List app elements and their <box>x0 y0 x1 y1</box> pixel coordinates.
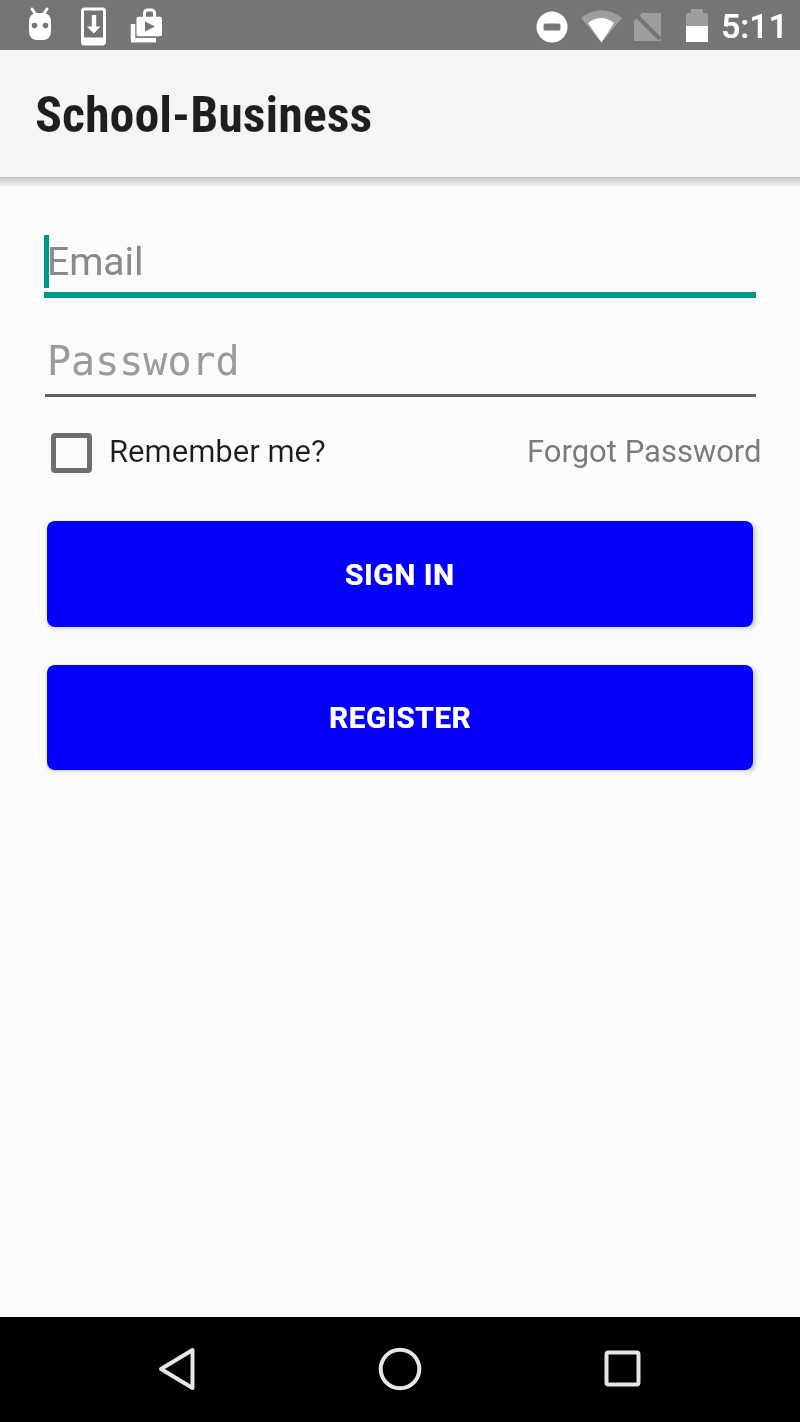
button[interactable] <box>584 1332 660 1408</box>
button[interactable]: Email <box>44 228 756 298</box>
button[interactable] <box>362 1332 438 1408</box>
staticText: REGISTER <box>329 700 472 735</box>
button[interactable]: Password <box>45 330 756 397</box>
staticText: Password <box>47 338 240 385</box>
button[interactable] <box>140 1332 216 1408</box>
staticText: Remember me? <box>109 433 326 469</box>
button[interactable]: REGISTER <box>47 665 753 770</box>
staticText: Email <box>47 239 144 285</box>
staticText: Forgot Password <box>527 433 762 469</box>
button[interactable]: SIGN IN <box>47 521 753 627</box>
staticText: SIGN IN <box>345 557 455 592</box>
button[interactable] <box>51 433 92 473</box>
staticText: 5:11 <box>721 6 788 46</box>
button[interactable]: Forgot Password <box>521 427 768 475</box>
button[interactable]: Remember me? <box>103 427 332 475</box>
staticText: School-Business <box>35 86 373 145</box>
